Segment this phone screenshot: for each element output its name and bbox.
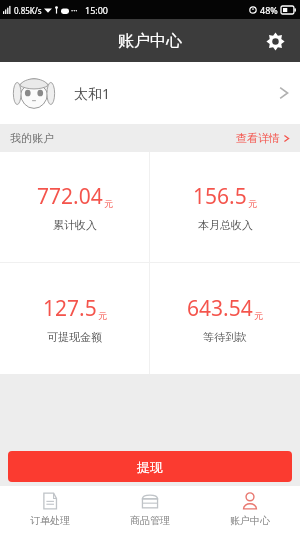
- staticText: 元: [98, 310, 107, 321]
- button[interactable]: 太和1: [0, 62, 300, 124]
- staticText: 元: [254, 310, 263, 321]
- button[interactable]: 156.5: [150, 152, 300, 262]
- staticText: 643.54: [187, 294, 253, 323]
- staticText: 15:00: [85, 4, 109, 16]
- staticText: 0.85K/s: [14, 5, 42, 16]
- staticText: 48%: [260, 4, 278, 16]
- button[interactable]: 127.5: [0, 263, 149, 374]
- staticText: 查看详情: [236, 131, 280, 145]
- staticText: 我的账户: [10, 131, 54, 145]
- button[interactable]: 643.54: [150, 263, 300, 374]
- staticText: 156.5: [193, 182, 247, 211]
- staticText: ···: [71, 5, 78, 16]
- button[interactable]: 商品管理: [100, 486, 200, 533]
- staticText: 账户中心: [118, 31, 182, 51]
- staticText: 订单处理: [30, 514, 70, 527]
- button[interactable]: 772.04: [0, 152, 149, 262]
- staticText: 等待到款: [203, 330, 247, 344]
- staticText: 账户中心: [230, 514, 270, 527]
- button[interactable]: Settings: [258, 24, 292, 58]
- button[interactable]: 账户中心: [200, 486, 300, 533]
- button[interactable]: 我的账户: [0, 124, 300, 152]
- staticText: 元: [104, 198, 113, 209]
- staticText: 本月总收入: [198, 218, 253, 232]
- staticText: 可提现金额: [47, 330, 102, 344]
- staticText: 提现: [137, 459, 163, 475]
- staticText: 商品管理: [130, 514, 170, 527]
- staticText: 累计收入: [53, 218, 97, 232]
- staticText: 772.04: [37, 182, 103, 211]
- staticText: 127.5: [43, 294, 97, 323]
- staticText: 元: [248, 198, 257, 209]
- button[interactable]: 提现: [8, 451, 292, 482]
- button[interactable]: 订单处理: [0, 486, 100, 533]
- staticText: 太和1: [74, 84, 111, 103]
